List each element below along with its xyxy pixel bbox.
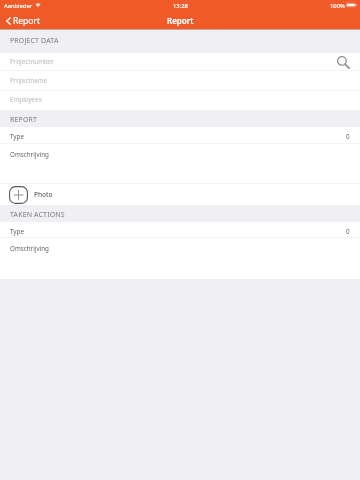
button[interactable]: Search project — [337, 55, 349, 69]
staticText: 0 — [346, 132, 350, 141]
staticText: Projectnumber — [10, 57, 54, 66]
button[interactable]: Employees — [0, 91, 360, 110]
staticText: Type — [10, 132, 24, 141]
button[interactable]: Type — [0, 127, 360, 144]
staticText: Omschrijving — [10, 150, 49, 159]
button[interactable]: Report — [0, 15, 45, 30]
staticText: Type — [10, 227, 24, 236]
button[interactable]: Add photo — [0, 184, 360, 205]
staticText: 0 — [346, 227, 350, 236]
staticText: Photo — [34, 190, 53, 199]
staticText: Report — [167, 15, 194, 26]
button[interactable]: Projectnumber — [0, 53, 360, 71]
staticText: 13:28 — [173, 2, 188, 10]
staticText: TAKEN ACTIONS — [10, 210, 65, 220]
staticText: Omschrijving — [10, 244, 49, 253]
staticText: PROJECT DATA — [10, 36, 59, 46]
staticText: Employees — [10, 95, 42, 104]
staticText: Report — [13, 15, 41, 26]
staticText: Aanbieder — [4, 2, 33, 10]
button[interactable]: Type — [0, 222, 360, 238]
staticText: REPORT — [10, 115, 38, 125]
staticText: Projectname — [10, 76, 48, 85]
button[interactable]: Add photo — [9, 186, 28, 204]
staticText: 100% — [330, 2, 345, 10]
button[interactable]: Omschrijving — [0, 238, 360, 279]
button[interactable]: Omschrijving — [0, 144, 360, 184]
button[interactable]: Projectname — [0, 71, 360, 91]
